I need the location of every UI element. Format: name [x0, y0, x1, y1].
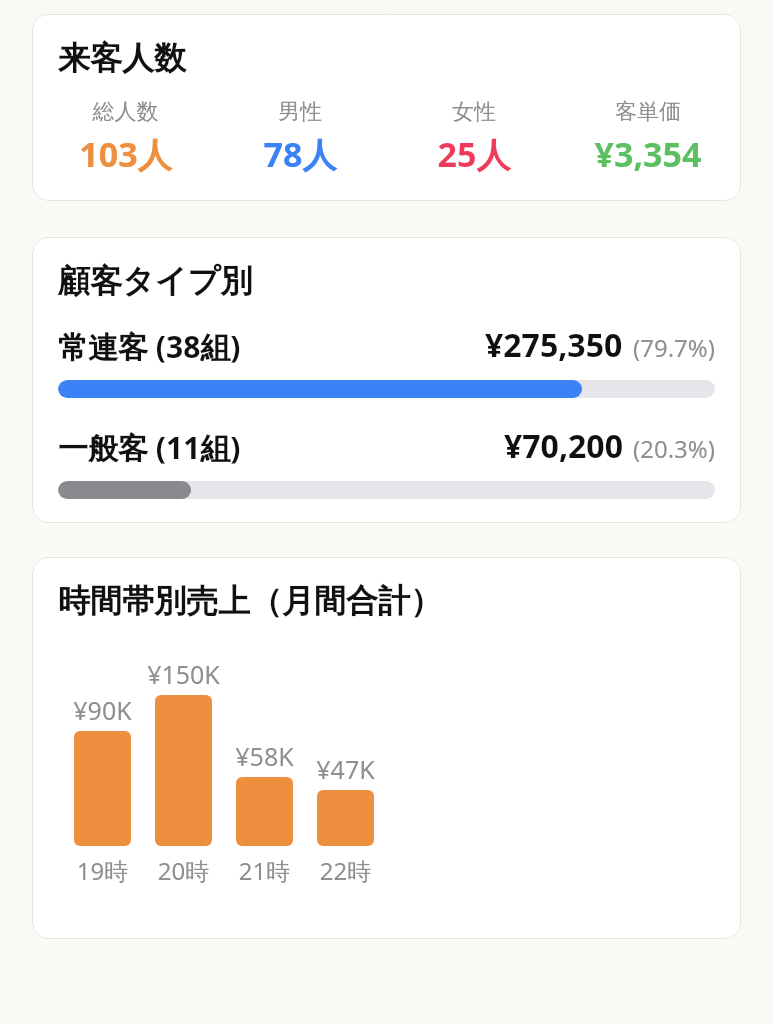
- staticText: ¥58K: [224, 739, 305, 773]
- staticText: 来客人数: [58, 38, 186, 78]
- staticText: ¥3,354: [561, 131, 735, 177]
- button[interactable]: 男性: [213, 98, 387, 177]
- staticText: 20時: [143, 854, 224, 887]
- staticText: ¥47K: [305, 752, 386, 786]
- staticText: 顧客タイプ別: [58, 261, 253, 301]
- button[interactable]: ¥90K: [62, 693, 143, 846]
- staticText: 客単価: [561, 98, 735, 126]
- staticText: 25人: [387, 131, 561, 177]
- staticText: 22時: [305, 854, 386, 887]
- button[interactable]: 客単価: [561, 98, 735, 177]
- button[interactable]: 常連客 (38組): [58, 323, 715, 398]
- staticText: 総人数: [38, 98, 213, 126]
- button[interactable]: ¥47K: [305, 752, 386, 846]
- button[interactable]: 来客人数: [32, 14, 741, 201]
- staticText: 78人: [213, 131, 387, 177]
- button[interactable]: 一般客 (11組): [58, 424, 715, 499]
- staticText: 21時: [224, 854, 305, 887]
- staticText: 時間帯別売上（月間合計）: [58, 581, 442, 621]
- button[interactable]: 顧客タイプ別: [32, 237, 741, 523]
- staticText: 常連客 (38組): [58, 326, 241, 367]
- button[interactable]: ¥58K: [224, 739, 305, 846]
- staticText: (20.3%): [633, 432, 715, 465]
- staticText: ¥275,350: [485, 323, 623, 367]
- staticText: ¥150K: [143, 657, 224, 691]
- button[interactable]: 女性: [387, 98, 561, 177]
- staticText: 103人: [38, 131, 213, 177]
- staticText: (79.7%): [633, 331, 715, 364]
- button[interactable]: 時間帯別売上（月間合計）: [32, 557, 741, 939]
- staticText: 男性: [213, 98, 387, 126]
- button[interactable]: 総人数: [38, 98, 213, 177]
- staticText: ¥70,200: [504, 424, 623, 468]
- button[interactable]: ¥150K: [143, 657, 224, 846]
- staticText: 19時: [62, 854, 143, 887]
- staticText: 一般客 (11組): [58, 427, 241, 468]
- staticText: ¥90K: [62, 693, 143, 727]
- staticText: 女性: [387, 98, 561, 126]
